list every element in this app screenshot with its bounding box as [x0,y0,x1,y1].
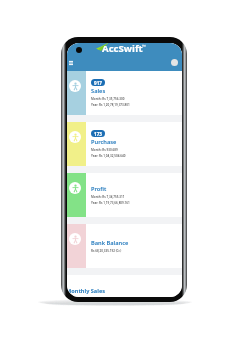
staticText: AccSwift [102,43,143,55]
button[interactable]: Profile [171,59,178,66]
button[interactable]: Bank Balance [67,224,182,268]
staticText: Year: Rs 1,19,73,66,809.161 [91,201,130,205]
staticText: Year: Rs 1,20,78,19,373.801 [91,103,130,107]
button[interactable]: Profit [67,173,182,217]
staticText: Purchase [91,138,117,146]
staticText: ™ [142,43,146,49]
staticText: Year: Rs 1,04,32,504.640 [91,154,126,158]
staticText: 173 [94,131,102,137]
staticText: Sales [91,87,106,95]
staticText: Profit [91,185,107,193]
staticText: Monthly Sales [67,287,106,295]
button[interactable]: 917 [67,71,182,115]
staticText: Bank Balance [91,239,129,247]
staticText: Month: Rs 930.689 [91,148,118,152]
staticText: Month: Rs 7,35,756.300 [91,97,125,101]
staticText: Rs 68,20,335.192 (Cr.) [91,249,122,253]
button[interactable]: 173 [67,122,182,166]
button[interactable]: Menu [67,58,76,68]
staticText: 917 [94,80,102,86]
staticText: Month: Rs 7,34,755.311 [91,195,125,199]
